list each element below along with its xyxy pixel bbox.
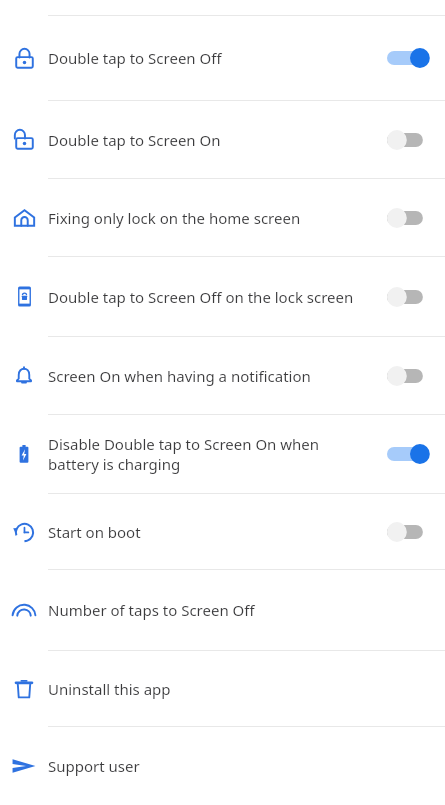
button[interactable]: Switch off [387, 203, 433, 233]
button[interactable]: Double tap to Screen On [0, 101, 445, 178]
staticText: Disable Double tap to Screen On when bat… [48, 434, 367, 474]
button[interactable]: Fixing only lock on the home screen [0, 179, 445, 256]
staticText: Screen On when having a notification [48, 366, 367, 386]
staticText: Double tap to Screen Off on the lock scr… [48, 287, 367, 307]
staticText: Double tap to Screen Off [48, 48, 367, 68]
staticText: Start on boot [48, 522, 367, 542]
staticText: Support user [48, 756, 367, 776]
button[interactable]: Switch off [387, 361, 433, 391]
button[interactable]: Uninstall this app [0, 651, 445, 726]
staticText: Double tap to Screen On [48, 130, 367, 150]
button[interactable]: Double tap to Screen Off [0, 16, 445, 100]
button[interactable]: Support user [0, 727, 445, 805]
button[interactable]: Switch on [387, 43, 433, 73]
staticText: Uninstall this app [48, 679, 367, 699]
button[interactable]: Switch off [387, 517, 433, 547]
button[interactable]: Screen On when having a notification [0, 337, 445, 414]
button[interactable]: Double tap to Screen Off on the lock scr… [0, 257, 445, 336]
staticText: Number of taps to Screen Off [48, 600, 367, 620]
button[interactable]: Switch on [387, 439, 433, 469]
button[interactable]: Start on boot [0, 494, 445, 569]
button[interactable]: Switch off [387, 125, 433, 155]
button[interactable]: Disable Double tap to Screen On when bat… [0, 415, 445, 493]
button[interactable]: Switch off [387, 282, 433, 312]
button[interactable]: Number of taps to Screen Off [0, 570, 445, 650]
staticText: Fixing only lock on the home screen [48, 208, 367, 228]
